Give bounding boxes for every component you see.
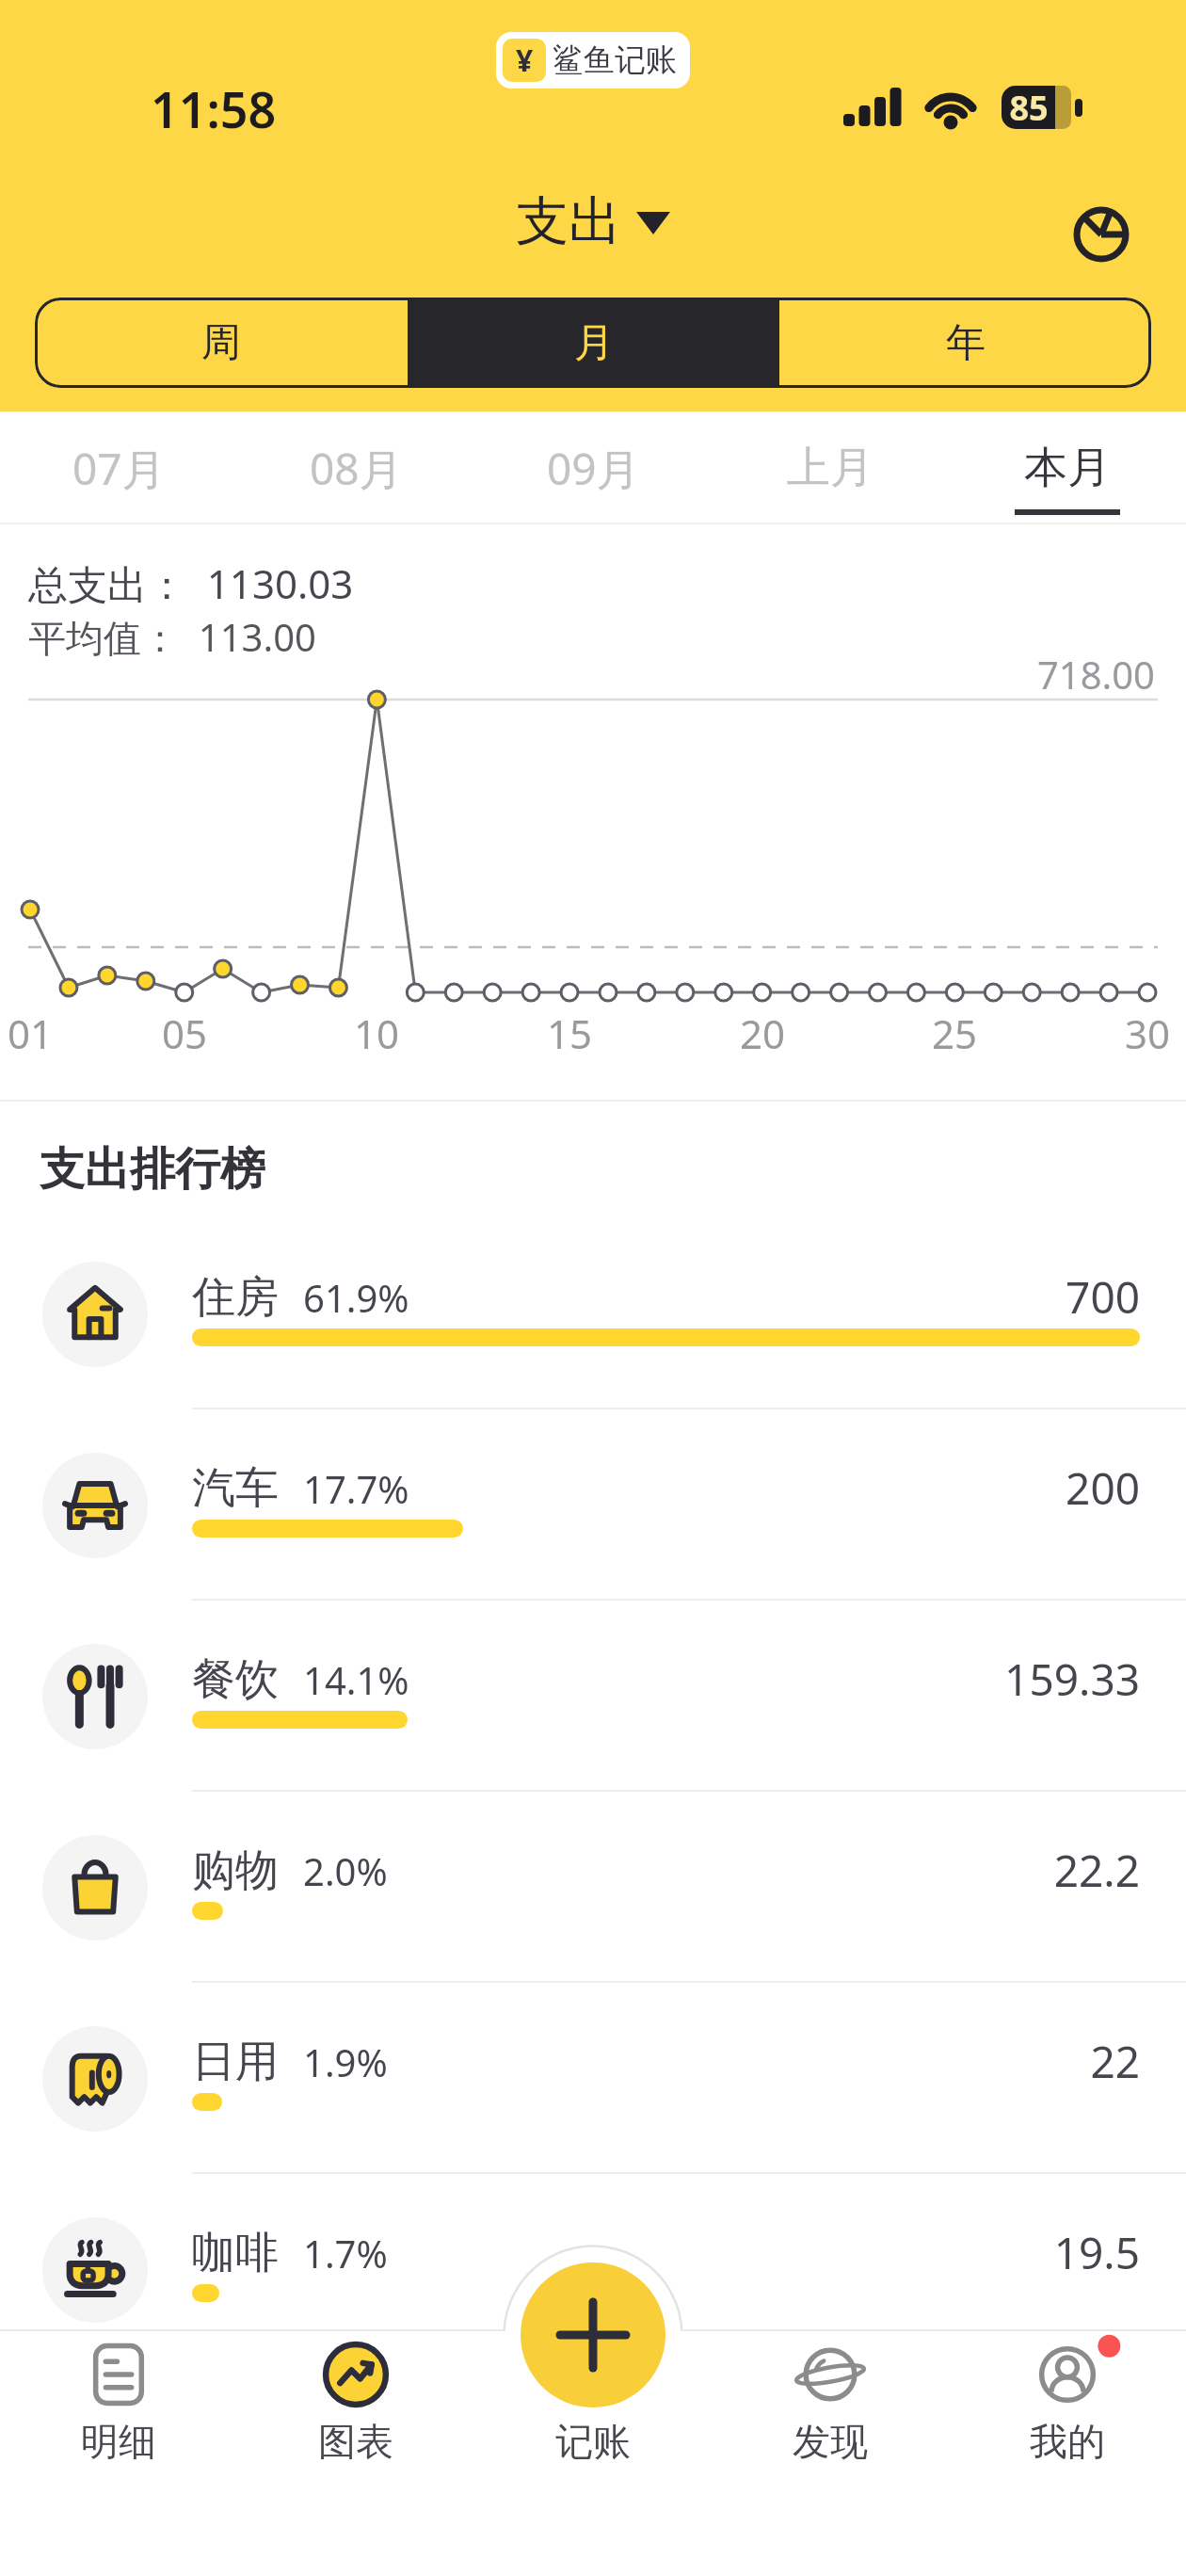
staticText: 发现 — [793, 2418, 868, 2465]
button[interactable]: 上月 — [712, 411, 949, 524]
staticText: 159.33 — [0, 1650, 1140, 1709]
button[interactable] — [1073, 206, 1130, 263]
staticText: 支出排行榜 — [40, 1141, 265, 1198]
staticText: 购物 — [192, 1843, 279, 1898]
staticText: 01 — [0, 1006, 68, 1060]
staticText: 汽车 — [192, 1461, 279, 1516]
staticText: 10 — [339, 1006, 414, 1060]
staticText: 09月 — [547, 439, 640, 498]
button[interactable]: 本月 — [949, 411, 1186, 524]
staticText: 住房 — [192, 1270, 279, 1325]
staticText: 明细 — [81, 2418, 156, 2465]
staticText: 11:58 — [151, 75, 277, 142]
staticText: 700 — [0, 1267, 1140, 1327]
staticText: 周 — [201, 318, 241, 368]
staticText: 本月 — [1024, 441, 1111, 495]
staticText: 2.0% — [303, 1845, 388, 1896]
button[interactable]: 餐饮 — [0, 1601, 1186, 1792]
staticText: 支出 — [516, 188, 621, 255]
staticText: 平均值： 113.00 — [28, 611, 316, 663]
button[interactable]: 支出 — [516, 188, 670, 255]
button[interactable]: 年 — [779, 298, 1151, 388]
button[interactable]: 咖啡 — [0, 2174, 1186, 2365]
staticText: 07月 — [72, 439, 166, 498]
button[interactable]: 记账 — [474, 2331, 712, 2576]
staticText: 1.9% — [303, 2037, 388, 2087]
button[interactable]: 09月 — [474, 411, 712, 524]
button[interactable]: 购物 — [0, 1792, 1186, 1983]
staticText: 200 — [0, 1458, 1140, 1518]
staticText: 61.9% — [303, 1272, 409, 1323]
staticText: 年 — [946, 318, 986, 368]
staticText: 25 — [917, 1006, 992, 1060]
staticText: 15 — [532, 1006, 607, 1060]
staticText: 图表 — [318, 2418, 393, 2465]
button[interactable]: 我的 — [949, 2331, 1186, 2576]
staticText: 17.7% — [303, 1463, 409, 1514]
staticText: 总支出： 1130.03 — [28, 556, 354, 610]
staticText: 718.00 — [0, 649, 1155, 700]
staticText: 30 — [1110, 1006, 1185, 1060]
button[interactable]: 发现 — [712, 2331, 949, 2576]
button[interactable] — [521, 2262, 665, 2407]
staticText: 85 — [1000, 85, 1058, 131]
staticText: 22 — [0, 2032, 1140, 2091]
staticText: 05 — [147, 1006, 222, 1060]
button[interactable]: 明细 — [0, 2331, 237, 2576]
button[interactable]: 07月 — [0, 411, 237, 524]
staticText: 日用 — [192, 2035, 279, 2089]
staticText: 19.5 — [0, 2223, 1140, 2282]
staticText: 20 — [725, 1006, 800, 1060]
staticText: 鲨鱼记账 — [553, 40, 677, 80]
button[interactable]: 日用 — [0, 1983, 1186, 2174]
button[interactable]: 周 — [35, 298, 408, 388]
button[interactable]: 住房 — [0, 1218, 1186, 1409]
staticText: 22.2 — [0, 1841, 1140, 1900]
staticText: 月 — [574, 318, 614, 368]
staticText: 我的 — [1030, 2418, 1105, 2465]
staticText: 餐饮 — [192, 1652, 279, 1707]
button[interactable]: 图表 — [237, 2331, 474, 2576]
staticText: 14.1% — [303, 1654, 409, 1705]
staticText: 咖啡 — [192, 2226, 279, 2280]
button[interactable]: 08月 — [237, 411, 474, 524]
button[interactable]: 月 — [408, 298, 779, 388]
staticText: 记账 — [555, 2418, 631, 2465]
staticText: 08月 — [310, 439, 403, 498]
staticText: 上月 — [787, 441, 873, 495]
staticText: 1.7% — [303, 2228, 388, 2278]
staticText: ¥ — [516, 40, 534, 81]
button[interactable]: 汽车 — [0, 1409, 1186, 1601]
